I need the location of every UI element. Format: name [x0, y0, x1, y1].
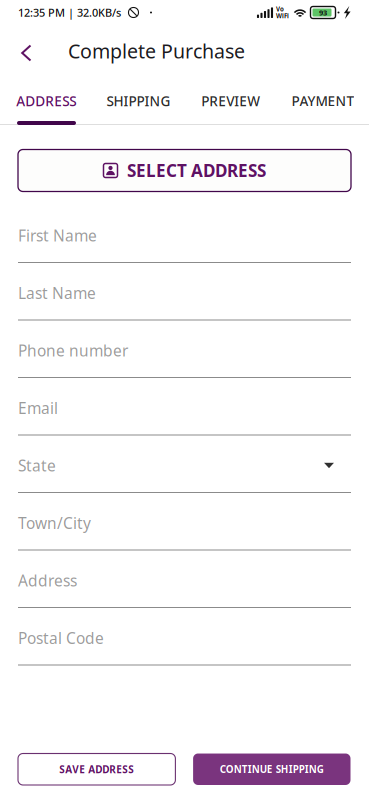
button[interactable]: PAYMENT: [277, 84, 369, 118]
staticText: Postal Code: [18, 627, 104, 648]
staticText: Town/City: [18, 512, 91, 533]
button[interactable]: SAVE ADDRESS: [18, 753, 175, 785]
staticText: PAYMENT: [291, 92, 354, 110]
button[interactable]: Back: [8, 25, 45, 69]
button[interactable]: ADDRESS: [0, 84, 92, 118]
staticText: SAVE ADDRESS: [59, 762, 134, 776]
staticText: First Name: [18, 225, 97, 246]
button[interactable]: CONTINUE SHIPPING: [193, 753, 350, 785]
staticText: State: [18, 455, 56, 476]
staticText: Complete Purchase: [68, 38, 245, 64]
staticText: Last Name: [18, 282, 96, 303]
button[interactable]: PREVIEW: [184, 84, 277, 118]
staticText: SELECT ADDRESS: [127, 159, 266, 182]
staticText: 93: [319, 7, 327, 18]
staticText: Email: [18, 397, 58, 418]
button[interactable]: SELECT ADDRESS: [18, 149, 351, 191]
staticText: SHIPPING: [106, 92, 170, 110]
staticText: Address: [18, 570, 77, 591]
staticText: ADDRESS: [16, 92, 76, 110]
staticText: WiFi: [276, 12, 289, 20]
staticText: CONTINUE SHIPPING: [220, 762, 324, 776]
button[interactable]: SHIPPING: [92, 84, 184, 118]
staticText: 12:35 PM | 32.0KB/s: [18, 5, 121, 20]
staticText: Phone number: [18, 340, 128, 361]
staticText: Vo: [276, 5, 284, 13]
staticText: PREVIEW: [201, 92, 260, 110]
